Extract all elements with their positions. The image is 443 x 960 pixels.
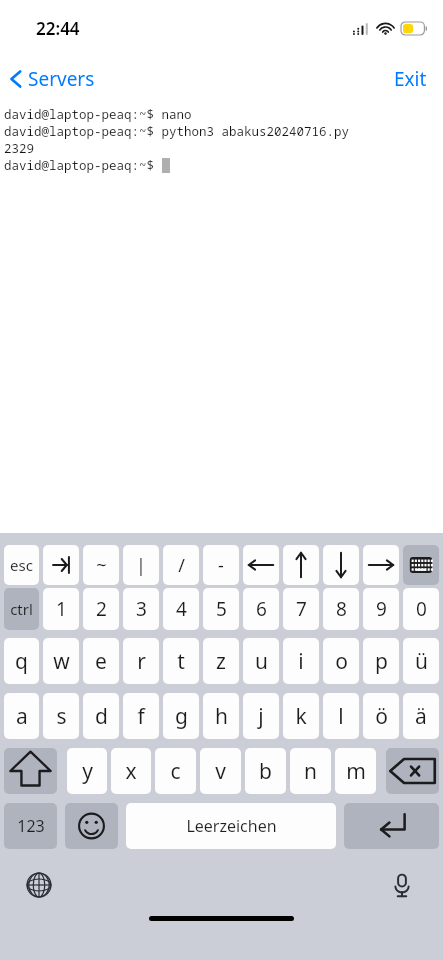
staticText: 8 [336, 596, 347, 622]
button[interactable]: j [243, 693, 279, 739]
button[interactable]: Leerzeichen [126, 803, 336, 849]
staticText: Servers [28, 66, 95, 92]
staticText: f [137, 702, 145, 731]
staticText: ~ [96, 553, 107, 578]
button[interactable]: 1 [43, 588, 79, 630]
button[interactable]: l [323, 693, 359, 739]
button[interactable]: f [123, 693, 159, 739]
button[interactable]: 0 [403, 588, 439, 630]
button[interactable]: Exit [378, 60, 443, 98]
button[interactable]: s [43, 693, 79, 739]
staticText: g [175, 702, 188, 731]
staticText: 3 [136, 596, 147, 622]
button[interactable]: 2 [83, 588, 119, 630]
button[interactable]: q [4, 638, 39, 684]
button[interactable]: 9 [363, 588, 399, 630]
staticText: r [137, 647, 146, 676]
button[interactable]: ö [363, 693, 399, 739]
button[interactable]: 8 [323, 588, 359, 630]
staticText: ctrl [10, 599, 33, 619]
staticText: Leerzeichen [186, 815, 277, 837]
staticText: 2329 [4, 140, 35, 157]
staticText: q [15, 647, 28, 676]
button[interactable]: c [155, 748, 196, 794]
staticText: b [259, 757, 272, 786]
staticText: | [136, 553, 146, 578]
button[interactable]: Servers [0, 62, 105, 96]
button[interactable]: k [283, 693, 319, 739]
staticText: / [178, 553, 185, 578]
button[interactable]: b [245, 748, 286, 794]
button[interactable]: i [283, 638, 319, 684]
button[interactable]: ~ [83, 545, 119, 585]
button[interactable]: m [335, 748, 376, 794]
staticText: 0 [416, 596, 427, 622]
button[interactable]: ä [403, 693, 439, 739]
button[interactable]: e [83, 638, 119, 684]
button[interactable]: Up [283, 545, 319, 585]
button[interactable]: 7 [283, 588, 319, 630]
staticText: 22:44 [36, 17, 80, 40]
staticText: z [216, 647, 226, 676]
button[interactable]: z [203, 638, 239, 684]
staticText: t [177, 647, 185, 676]
button[interactable]: | [123, 545, 159, 585]
staticText: k [295, 702, 307, 731]
button[interactable]: y [67, 748, 107, 794]
button[interactable]: ü [403, 638, 439, 684]
button[interactable]: p [363, 638, 399, 684]
button[interactable]: w [43, 638, 79, 684]
button[interactable]: Change keyboard [18, 864, 60, 906]
staticText: ü [415, 647, 428, 676]
button[interactable]: Left [243, 545, 279, 585]
button[interactable]: a [4, 693, 39, 739]
staticText: o [335, 647, 348, 676]
staticText: d [95, 702, 108, 731]
staticText: l [338, 702, 344, 731]
button[interactable]: x [111, 748, 151, 794]
button[interactable]: / [163, 545, 199, 585]
button[interactable]: v [200, 748, 241, 794]
button[interactable]: 5 [203, 588, 239, 630]
button[interactable]: Tab [43, 545, 79, 585]
button[interactable]: Emoji [65, 803, 118, 849]
button[interactable]: Return [344, 803, 439, 849]
button[interactable]: 3 [123, 588, 159, 630]
button[interactable]: t [163, 638, 199, 684]
staticText: Exit [394, 66, 427, 92]
button[interactable]: Backspace [386, 748, 439, 794]
button[interactable]: Dictation [381, 864, 423, 906]
button[interactable]: 123 [4, 803, 57, 849]
button[interactable]: o [323, 638, 359, 684]
staticText: 6 [256, 596, 267, 622]
staticText: e [95, 647, 107, 676]
staticText: 9 [376, 596, 387, 622]
button[interactable]: h [203, 693, 239, 739]
staticText: ö [375, 702, 388, 731]
button[interactable]: - [203, 545, 239, 585]
staticText: 4 [176, 596, 187, 622]
staticText: p [375, 647, 388, 676]
staticText: esc [10, 555, 33, 575]
staticText: 2 [96, 596, 107, 622]
button[interactable]: ctrl [4, 588, 39, 630]
button[interactable]: Right [363, 545, 399, 585]
button[interactable]: 4 [163, 588, 199, 630]
button[interactable]: esc [4, 545, 39, 585]
staticText: v [215, 757, 226, 786]
staticText: 5 [216, 596, 227, 622]
staticText: c [170, 757, 181, 786]
button[interactable]: Hide keyboard [403, 545, 439, 585]
button[interactable]: d [83, 693, 119, 739]
staticText: s [56, 702, 67, 731]
button[interactable]: n [290, 748, 331, 794]
button[interactable]: g [163, 693, 199, 739]
button[interactable]: Shift [4, 748, 57, 794]
staticText: a [16, 702, 28, 731]
button[interactable]: Down [323, 545, 359, 585]
staticText: j [258, 702, 264, 731]
staticText: 7 [296, 596, 307, 622]
button[interactable]: u [243, 638, 279, 684]
button[interactable]: r [123, 638, 159, 684]
button[interactable]: 6 [243, 588, 279, 630]
